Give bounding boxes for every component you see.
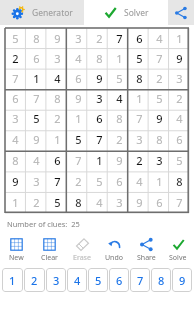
button[interactable]: 8 [129,68,149,88]
button[interactable]: 3 [46,268,66,292]
button[interactable]: 4 [169,108,189,129]
button[interactable]: 5 [129,48,149,68]
button[interactable]: 8 [151,268,171,292]
button[interactable]: 8 [68,192,89,213]
button[interactable]: 5 [26,108,47,129]
button[interactable]: 9 [89,68,109,88]
button[interactable]: 4 [149,28,169,48]
button[interactable]: 3 [68,28,89,48]
button[interactable]: Clear [33,235,66,265]
button[interactable]: 2 [24,268,45,292]
button[interactable]: 5 [47,192,68,213]
button[interactable]: 6 [109,268,129,292]
button[interactable]: 2 [68,171,89,192]
button[interactable]: 8 [26,28,47,48]
button[interactable]: 7 [109,28,129,48]
button[interactable]: 2 [149,68,169,88]
button[interactable]: 1 [169,28,189,48]
button[interactable]: 6 [129,28,149,48]
button[interactable]: Generator [0,0,84,25]
button[interactable]: 2 [47,108,68,129]
button[interactable]: 4 [89,192,109,213]
button[interactable]: 9 [26,129,47,150]
button[interactable]: Erase [66,235,98,265]
button[interactable]: 8 [89,48,109,68]
button[interactable]: 5 [109,68,129,88]
button[interactable]: Solve [162,235,194,265]
button[interactable]: 9 [169,48,189,68]
button[interactable]: 6 [26,48,47,68]
button[interactable]: 9 [129,192,149,213]
button[interactable]: 9 [149,108,169,129]
button[interactable]: 4 [129,171,149,192]
button[interactable]: Solver [84,0,168,25]
button[interactable]: 5 [149,88,169,108]
button[interactable]: 2 [5,48,26,68]
button[interactable]: 7 [68,150,89,171]
button[interactable]: 2 [169,88,189,108]
button[interactable]: 6 [68,68,89,88]
button[interactable]: 2 [109,129,129,150]
button[interactable]: 9 [5,171,26,192]
button[interactable]: 5 [88,268,108,292]
button[interactable]: 9 [172,268,192,292]
button[interactable]: 7 [5,68,26,88]
button[interactable]: 3 [89,88,109,108]
button[interactable]: 6 [109,171,129,192]
button[interactable]: Share [168,0,194,25]
button[interactable]: 3 [129,129,149,150]
button[interactable]: 3 [26,171,47,192]
button[interactable]: 5 [5,28,26,48]
button[interactable]: 9 [68,88,89,108]
button[interactable]: 9 [109,150,129,171]
button[interactable]: 1 [26,68,47,88]
button[interactable]: 1 [129,88,149,108]
button[interactable]: 2 [129,150,149,171]
button[interactable]: 3 [47,48,68,68]
button[interactable]: 2 [89,28,109,48]
button[interactable]: 5 [169,150,189,171]
button[interactable]: New [0,235,33,265]
button[interactable]: 3 [5,108,26,129]
button[interactable]: 8 [5,150,26,171]
button[interactable]: 4 [26,150,47,171]
button[interactable]: 8 [109,108,129,129]
button[interactable]: 8 [169,171,189,192]
button[interactable]: 3 [169,68,189,88]
button[interactable]: 7 [149,48,169,68]
button[interactable]: 1 [47,129,68,150]
button[interactable]: 8 [47,88,68,108]
button[interactable]: 4 [67,268,87,292]
button[interactable]: Share [130,235,162,265]
button[interactable]: 6 [5,88,26,108]
button[interactable]: 7 [129,108,149,129]
button[interactable]: 6 [169,129,189,150]
button[interactable]: 7 [169,192,189,213]
button[interactable]: 5 [89,171,109,192]
button[interactable]: 9 [47,28,68,48]
button[interactable]: 2 [26,192,47,213]
button[interactable]: 1 [149,171,169,192]
button[interactable]: 1 [2,268,23,292]
button[interactable]: 7 [130,268,150,292]
button[interactable]: 4 [5,129,26,150]
button[interactable]: 4 [47,68,68,88]
button[interactable]: 3 [149,150,169,171]
button[interactable]: 3 [109,192,129,213]
button[interactable]: 1 [89,150,109,171]
button[interactable]: 7 [26,88,47,108]
button[interactable]: 5 [68,129,89,150]
button[interactable]: 6 [89,108,109,129]
button[interactable]: 7 [47,171,68,192]
button[interactable]: 1 [68,108,89,129]
button[interactable]: 7 [89,129,109,150]
button[interactable]: 8 [149,129,169,150]
button[interactable]: 1 [5,192,26,213]
button[interactable]: Undo [98,235,130,265]
button[interactable]: 4 [109,88,129,108]
button[interactable]: 1 [109,48,129,68]
button[interactable]: 4 [68,48,89,68]
button[interactable]: 6 [47,150,68,171]
staticText: New [9,253,24,263]
button[interactable]: 6 [149,192,169,213]
